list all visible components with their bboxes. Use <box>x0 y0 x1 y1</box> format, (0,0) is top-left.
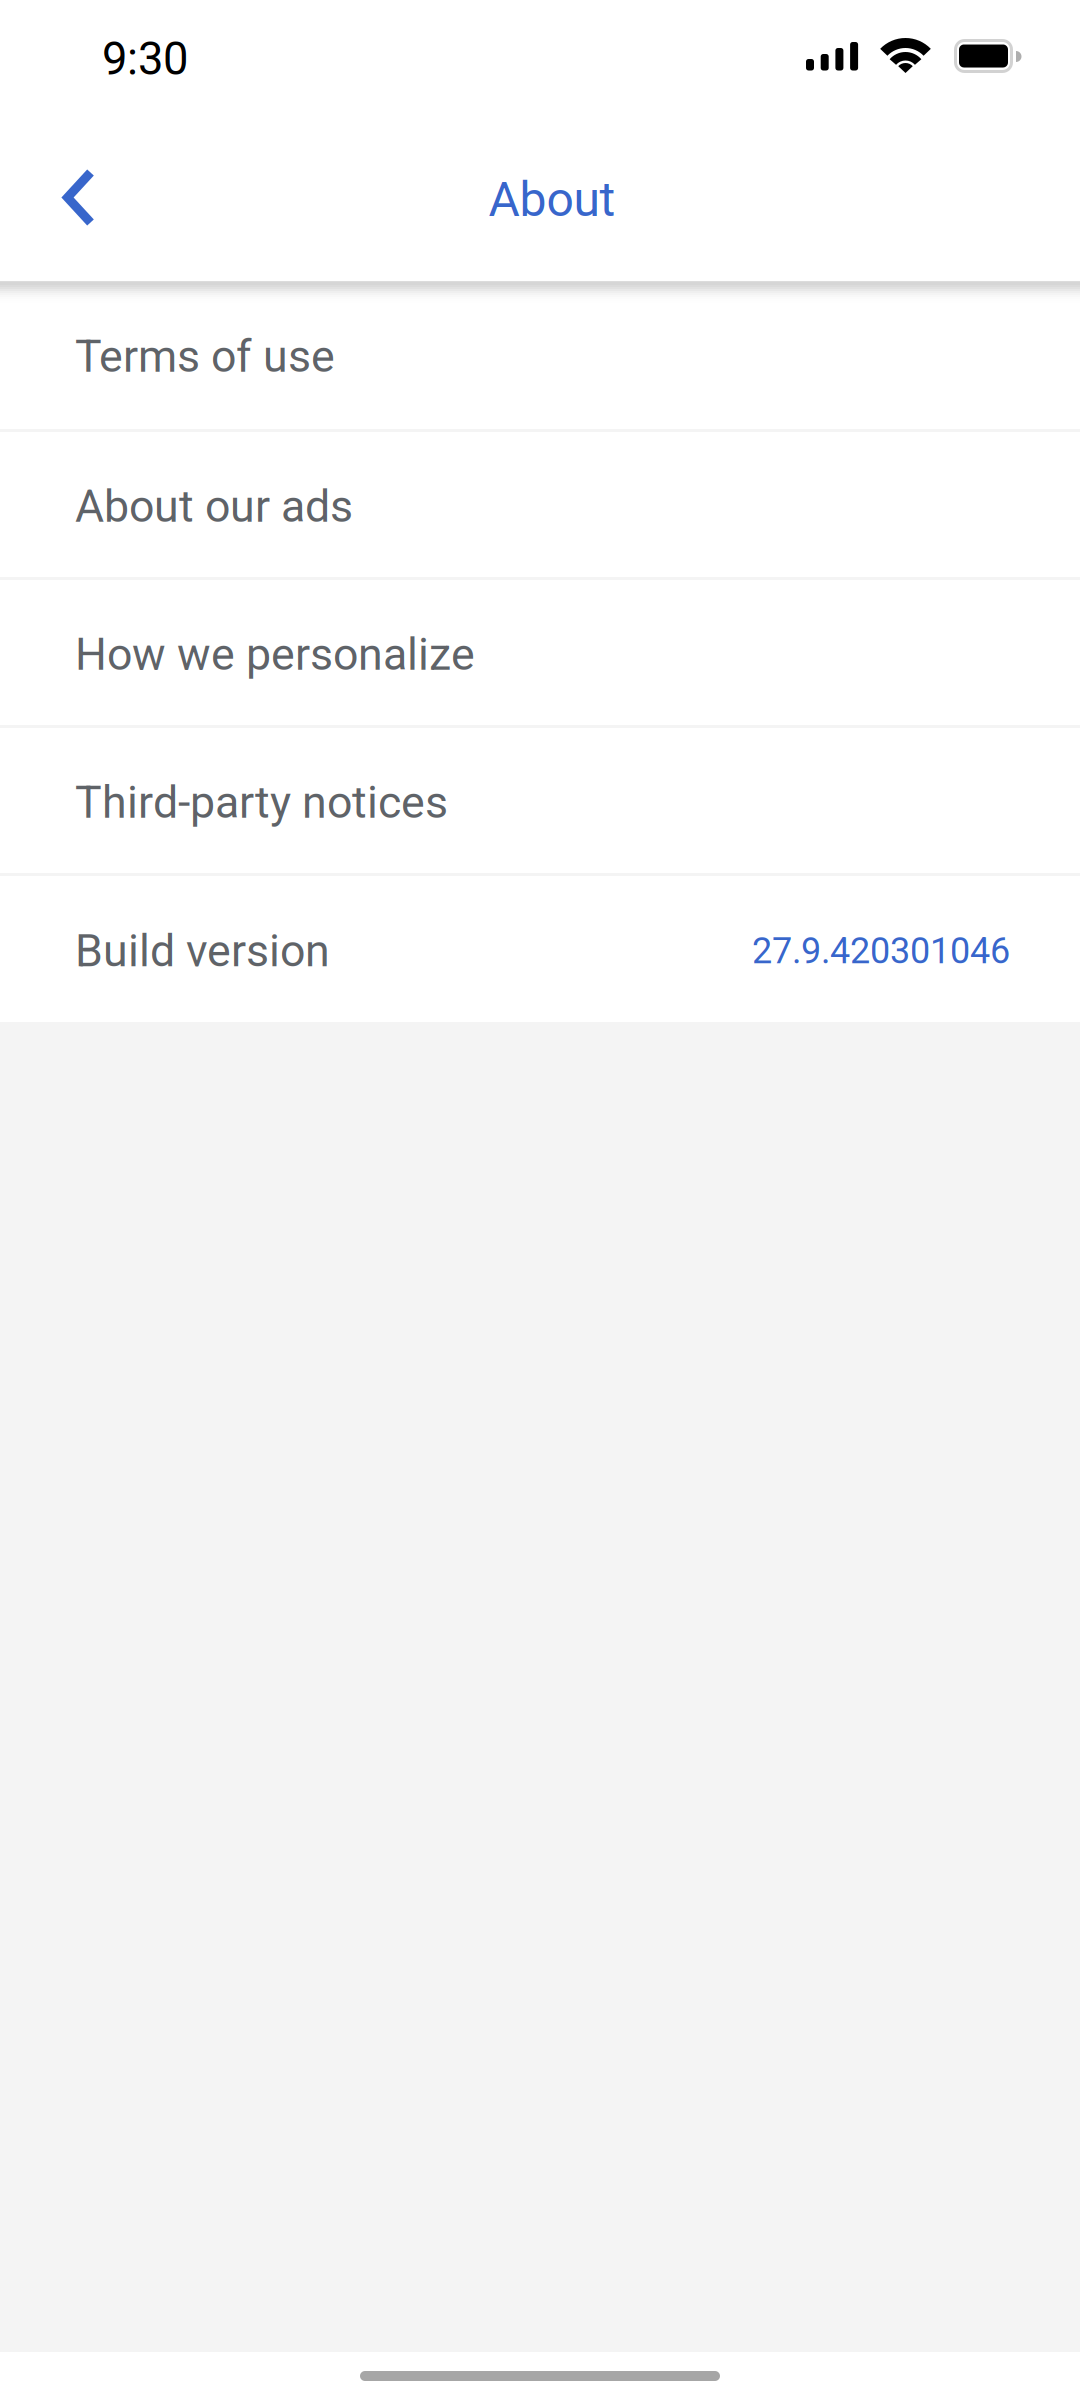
staticText: Build version <box>75 925 330 977</box>
button[interactable]: Back <box>0 134 158 264</box>
staticText: About our ads <box>75 480 353 533</box>
button[interactable]: Terms of use <box>0 281 1080 429</box>
staticText: About <box>488 171 615 228</box>
button[interactable]: Third-party notices <box>0 728 1080 873</box>
button[interactable]: Build version <box>0 876 1080 1022</box>
staticText: Third-party notices <box>75 776 448 829</box>
button[interactable]: How we personalize <box>0 580 1080 725</box>
staticText: How we personalize <box>75 628 475 681</box>
staticText: Terms of use <box>75 330 335 383</box>
staticText: 9:30 <box>102 32 188 85</box>
button[interactable]: About our ads <box>0 432 1080 577</box>
staticText: 27.9.420301046 <box>752 930 1010 972</box>
